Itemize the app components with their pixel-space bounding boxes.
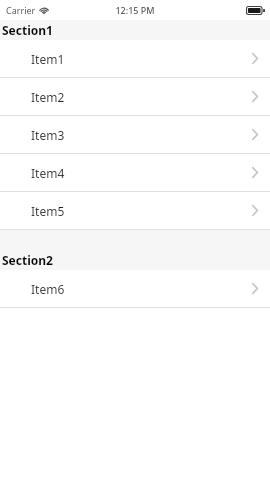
button[interactable]: Item5 bbox=[0, 192, 270, 229]
staticText: Item2 bbox=[31, 89, 65, 105]
staticText: Item5 bbox=[31, 203, 65, 219]
button[interactable]: Item3 bbox=[0, 116, 270, 153]
staticText: 12:15 PM bbox=[115, 4, 155, 16]
staticText: Carrier bbox=[6, 4, 36, 16]
staticText: Section1 bbox=[2, 22, 53, 38]
button[interactable]: Item6 bbox=[0, 270, 270, 307]
staticText: Section2 bbox=[2, 252, 53, 268]
staticText: Item1 bbox=[31, 51, 65, 67]
button[interactable]: Item4 bbox=[0, 154, 270, 191]
staticText: Item6 bbox=[31, 281, 65, 297]
button[interactable]: Item2 bbox=[0, 78, 270, 115]
button[interactable]: Item1 bbox=[0, 40, 270, 77]
staticText: Item4 bbox=[31, 165, 65, 181]
staticText: Item3 bbox=[31, 127, 65, 143]
